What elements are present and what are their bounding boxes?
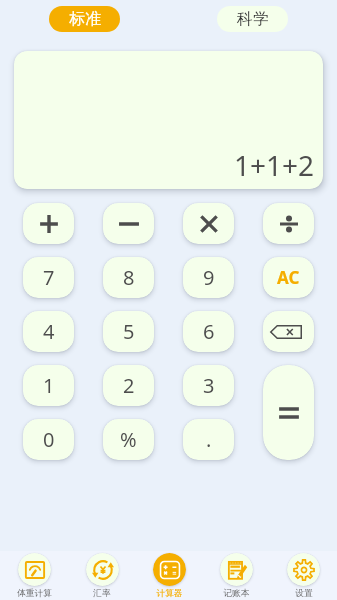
- button[interactable]: .: [183, 419, 234, 460]
- button[interactable]: 计算器: [136, 551, 203, 600]
- staticText: 3: [203, 372, 215, 399]
- staticText: 设置: [295, 588, 313, 599]
- staticText: 科学: [237, 9, 269, 29]
- button[interactable]: 6: [183, 311, 234, 352]
- staticText: 1+1+2: [234, 146, 315, 184]
- staticText: 体重计算: [17, 588, 52, 599]
- button[interactable]: 1: [23, 365, 74, 406]
- staticText: .: [206, 426, 212, 453]
- button[interactable]: 4: [23, 311, 74, 352]
- staticText: 6: [203, 318, 215, 345]
- button[interactable]: Subtract: [103, 203, 154, 244]
- button[interactable]: Multiply: [183, 203, 234, 244]
- button[interactable]: 设置: [270, 551, 337, 600]
- staticText: 2: [123, 372, 135, 399]
- staticText: 8: [123, 264, 135, 291]
- button[interactable]: %: [103, 419, 154, 460]
- button[interactable]: 记账本: [203, 551, 270, 600]
- staticText: 记账本: [223, 588, 250, 599]
- button[interactable]: 2: [103, 365, 154, 406]
- button[interactable]: 科学: [217, 6, 288, 32]
- staticText: 标准: [69, 9, 101, 29]
- button[interactable]: 8: [103, 257, 154, 298]
- button[interactable]: 汇率: [68, 551, 136, 600]
- button[interactable]: 9: [183, 257, 234, 298]
- staticText: AC: [277, 266, 300, 289]
- button[interactable]: 3: [183, 365, 234, 406]
- button[interactable]: 标准: [49, 6, 120, 32]
- button[interactable]: AC: [263, 257, 314, 298]
- staticText: 5: [123, 318, 135, 345]
- button[interactable]: Backspace: [263, 311, 314, 352]
- button[interactable]: 体重计算: [0, 551, 68, 600]
- staticText: 0: [43, 426, 55, 453]
- button[interactable]: Add: [23, 203, 74, 244]
- button[interactable]: Divide: [263, 203, 314, 244]
- button[interactable]: 7: [23, 257, 74, 298]
- staticText: %: [120, 426, 137, 453]
- button[interactable]: 5: [103, 311, 154, 352]
- staticText: 7: [43, 264, 55, 291]
- staticText: 计算器: [156, 588, 183, 599]
- staticText: 1: [43, 372, 55, 399]
- button[interactable]: Equals: [263, 365, 314, 460]
- staticText: 4: [43, 318, 55, 345]
- button[interactable]: 0: [23, 419, 74, 460]
- staticText: 汇率: [93, 588, 111, 599]
- staticText: 9: [203, 264, 215, 291]
